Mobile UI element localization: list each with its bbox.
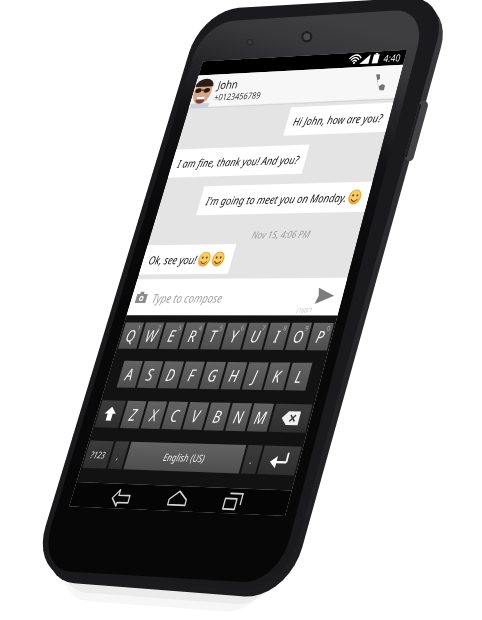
button[interactable] xyxy=(0,0,482,620)
